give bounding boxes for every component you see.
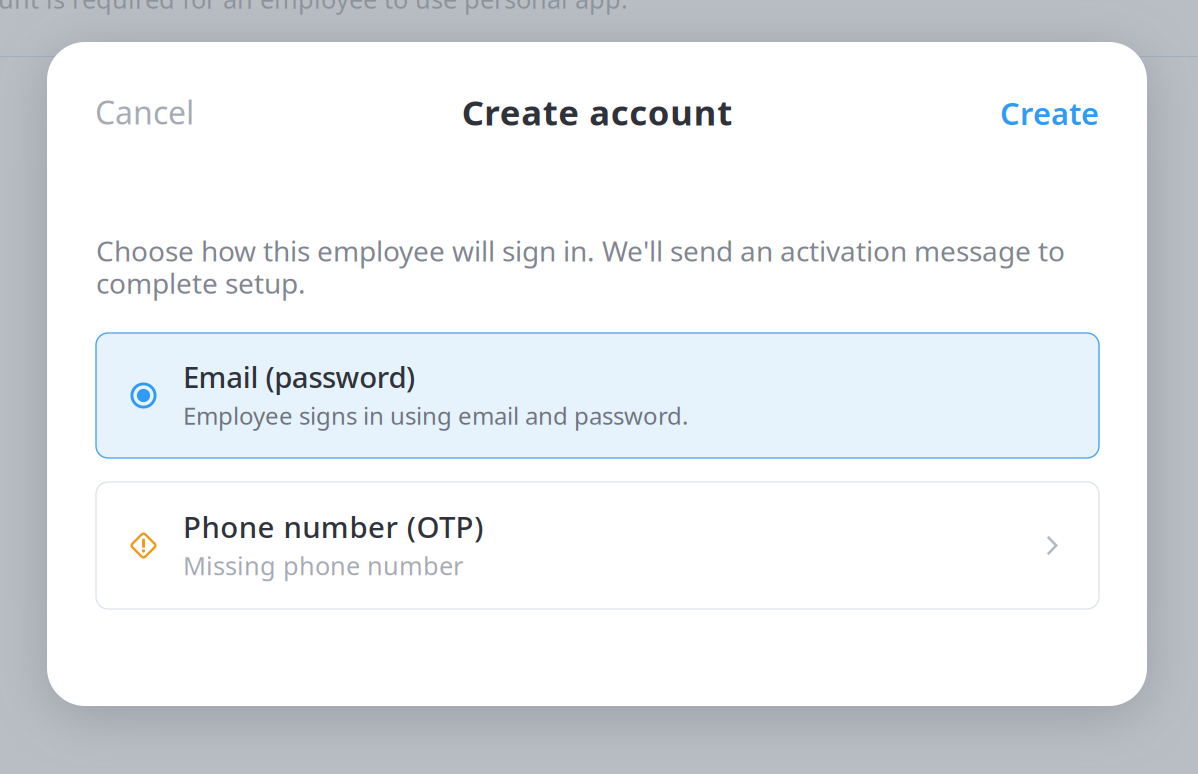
staticText: complete setup. bbox=[96, 264, 306, 301]
staticText: Email (password) bbox=[183, 357, 415, 396]
staticText: Choose how this employee will sign in. W… bbox=[96, 232, 1065, 269]
button[interactable]: Create bbox=[929, 85, 1099, 141]
button[interactable]: Phone number (OTP) bbox=[96, 482, 1099, 609]
staticText: Create bbox=[1000, 93, 1099, 133]
button[interactable]: Email (password) bbox=[96, 333, 1099, 458]
staticText: Cancel bbox=[95, 91, 194, 133]
staticText: Create account bbox=[462, 89, 732, 135]
staticText: Missing phone number bbox=[183, 549, 463, 582]
staticText: Employee signs in using email and passwo… bbox=[183, 400, 688, 431]
staticText: Phone number (OTP) bbox=[183, 507, 483, 546]
staticText: unt is required for an employee to use p… bbox=[0, 0, 628, 16]
button[interactable]: Cancel bbox=[95, 84, 265, 140]
